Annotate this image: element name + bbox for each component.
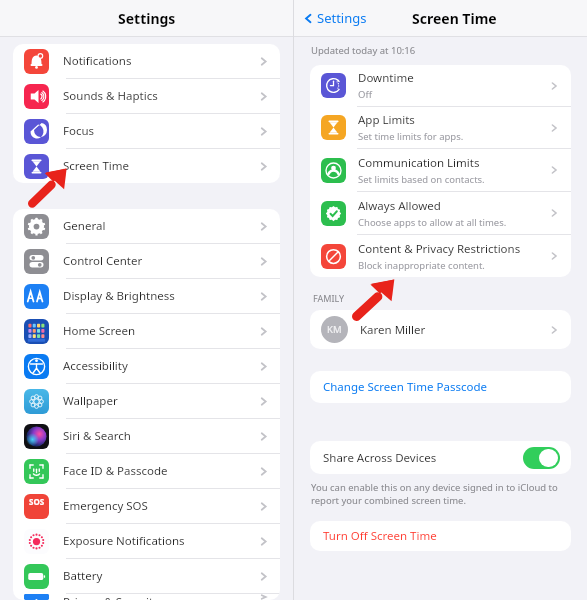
staticText: Content & Privacy Restrictions: [358, 241, 521, 257]
staticText: Screen Time: [63, 158, 258, 174]
staticText: Exposure Notifications: [63, 533, 258, 549]
button[interactable]: Focus: [13, 114, 280, 149]
staticText: Karen Miller: [360, 322, 549, 338]
button[interactable]: Control Center: [13, 244, 280, 279]
staticText: Share Across Devices: [323, 450, 523, 466]
button[interactable]: KM: [310, 310, 571, 349]
button[interactable]: App Limits: [310, 107, 571, 149]
staticText: Updated today at 10:16: [311, 44, 416, 57]
staticText: Choose apps to allow at all times.: [358, 216, 507, 229]
staticText: App Limits: [358, 112, 415, 128]
staticText: Communication Limits: [358, 155, 480, 171]
button[interactable]: Emergency SOS: [13, 489, 280, 524]
staticText: Siri & Search: [63, 428, 258, 444]
staticText: Downtime: [358, 70, 414, 86]
staticText: Control Center: [63, 253, 258, 269]
staticText: KM: [327, 323, 342, 336]
staticText: Privacy & Security: [63, 594, 258, 600]
staticText: Emergency SOS: [63, 498, 258, 514]
button[interactable]: Privacy & Security: [13, 594, 280, 600]
button[interactable]: Turn Off Screen Time: [310, 521, 571, 551]
staticText: Block inappropriate content.: [358, 259, 485, 272]
button[interactable]: Home Screen: [13, 314, 280, 349]
staticText: Notifications: [63, 53, 258, 69]
button[interactable]: Content & Privacy Restrictions: [310, 235, 571, 277]
button[interactable]: Battery: [13, 559, 280, 594]
button[interactable]: Communication Limits: [310, 149, 571, 192]
staticText: Display & Brightness: [63, 288, 258, 304]
staticText: FAMILY: [313, 292, 344, 304]
staticText: Set limits based on contacts.: [358, 173, 485, 186]
button[interactable]: Change Screen Time Passcode: [310, 371, 571, 403]
button[interactable]: Settings: [303, 9, 367, 27]
button[interactable]: Display & Brightness: [13, 279, 280, 314]
staticText: You can enable this on any device signed…: [311, 481, 562, 507]
staticText: Set time limits for apps.: [358, 130, 464, 143]
staticText: Face ID & Passcode: [63, 463, 258, 479]
button[interactable]: Siri & Search: [13, 419, 280, 454]
button[interactable]: Always Allowed: [310, 192, 571, 235]
staticText: Turn Off Screen Time: [323, 528, 437, 544]
staticText: Settings: [317, 9, 367, 27]
button[interactable]: Screen Time: [13, 149, 280, 183]
button[interactable]: Downtime: [310, 65, 571, 107]
staticText: Home Screen: [63, 323, 258, 339]
staticText: Off: [358, 88, 372, 101]
staticText: Sounds & Haptics: [63, 88, 258, 104]
staticText: Always Allowed: [358, 198, 441, 214]
button[interactable]: Notifications: [13, 44, 280, 79]
button[interactable]: Share Across Devices: [310, 441, 571, 474]
staticText: Focus: [63, 123, 258, 139]
staticText: General: [63, 218, 258, 234]
button[interactable]: General: [13, 209, 280, 244]
button[interactable]: Sounds & Haptics: [13, 79, 280, 114]
staticText: Settings: [118, 9, 176, 28]
button[interactable]: Exposure Notifications: [13, 524, 280, 559]
staticText: SOS: [29, 496, 45, 507]
staticText: Change Screen Time Passcode: [323, 379, 487, 395]
staticText: Screen Time: [412, 9, 497, 28]
staticText: Battery: [63, 568, 258, 584]
button[interactable]: Wallpaper: [13, 384, 280, 419]
staticText: Wallpaper: [63, 393, 258, 409]
button[interactable]: Face ID & Passcode: [13, 454, 280, 489]
button[interactable]: Share Across Devices toggle, on: [523, 447, 560, 469]
staticText: Accessibility: [63, 358, 258, 374]
button[interactable]: Accessibility: [13, 349, 280, 384]
